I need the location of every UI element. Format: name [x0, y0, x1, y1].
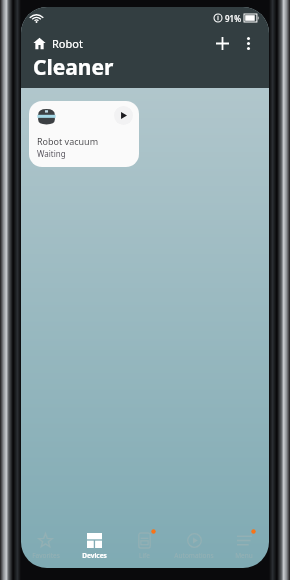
button[interactable]: Start cleaning	[29, 101, 139, 167]
button[interactable]: More options	[236, 31, 260, 55]
button[interactable]: Devices	[70, 528, 119, 568]
staticText: Life	[139, 551, 150, 560]
button[interactable]: Robot	[30, 34, 86, 53]
staticText: Devices	[82, 551, 107, 560]
staticText: Menu	[235, 551, 253, 560]
staticText: 91%	[225, 13, 241, 24]
button[interactable]: Add	[210, 31, 234, 55]
staticText: Robot vacuum	[37, 135, 99, 147]
button[interactable]: Life	[119, 528, 169, 568]
staticText: Favorites	[32, 551, 60, 560]
staticText: Waiting	[37, 148, 66, 159]
button[interactable]: Automations	[169, 528, 219, 568]
staticText: Automations	[174, 551, 214, 560]
button[interactable]: Menu	[219, 528, 269, 568]
button[interactable]: Favorites	[21, 528, 70, 568]
staticText: Robot	[52, 36, 83, 51]
staticText: Cleaner	[33, 53, 114, 82]
button[interactable]: Start cleaning	[114, 106, 133, 125]
